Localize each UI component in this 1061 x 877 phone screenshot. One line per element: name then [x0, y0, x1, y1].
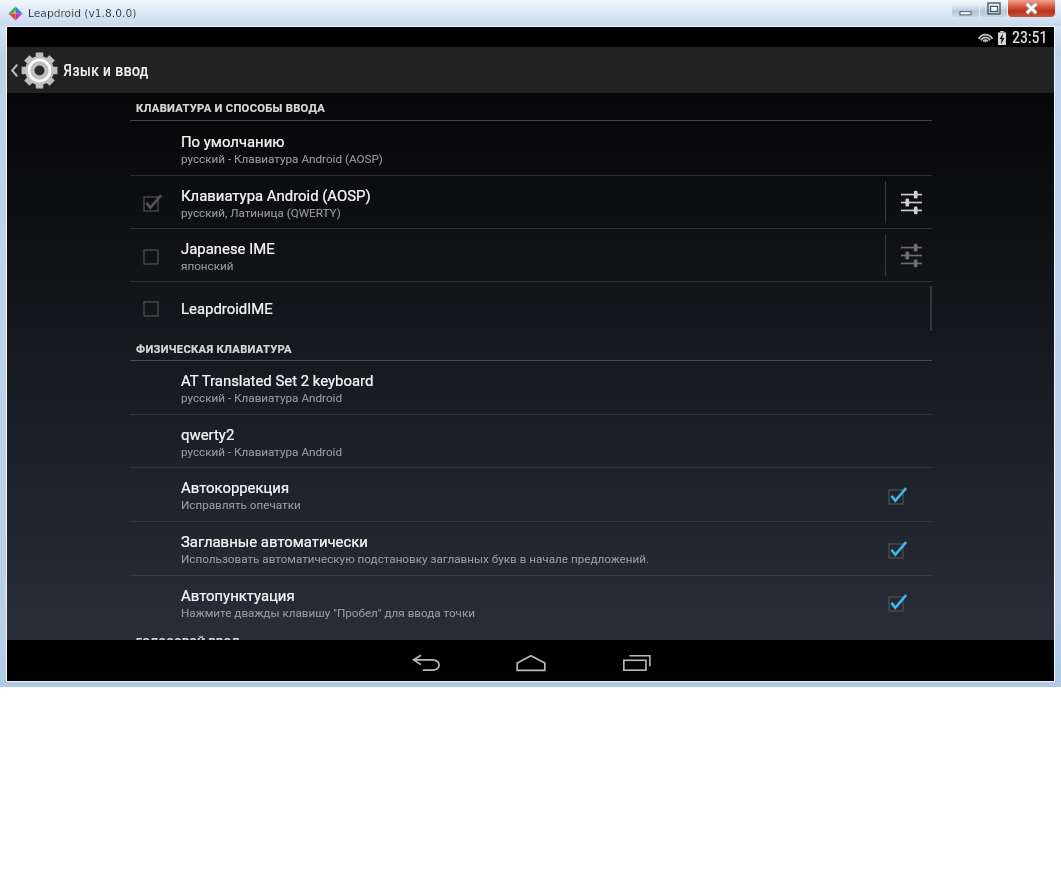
button[interactable]: Keyboard settings	[886, 229, 932, 281]
staticText: русский - Клавиатура Android (AOSP)	[181, 152, 383, 166]
staticText: 23:51	[1012, 28, 1048, 47]
staticText: ФИЗИЧЕСКАЯ КЛАВИАТУРА	[136, 343, 292, 356]
staticText: Нажмите дважды клавишу "Пробел" для ввод…	[181, 606, 476, 620]
staticText: Заглавные автоматически	[181, 533, 368, 550]
staticText: русский - Клавиатура Android	[181, 391, 342, 405]
staticText: русский, Латиница (QWERTY)	[181, 206, 341, 220]
staticText: Japanese IME	[181, 240, 275, 257]
staticText: Использовать автоматическую подстановку …	[181, 552, 650, 566]
staticText: qwerty2	[181, 426, 235, 443]
button[interactable]: Home	[478, 640, 584, 681]
staticText: LeapdroidIME	[181, 300, 273, 317]
button[interactable]: Заглавные автоматически	[130, 522, 932, 575]
staticText: Leapdroid (v1.8.0.0)	[28, 7, 137, 19]
button[interactable]: Клавиатура Android (AOSP)	[130, 176, 932, 228]
staticText: Язык и ввод	[63, 61, 149, 80]
staticText: Автопунктуация	[181, 587, 295, 604]
button[interactable]: qwerty2	[130, 415, 932, 467]
staticText: AT Translated Set 2 keyboard	[181, 372, 374, 389]
button[interactable]: Back	[7, 47, 1054, 93]
button[interactable]: Keyboard settings	[886, 176, 932, 228]
button[interactable]: Japanese IME	[130, 229, 932, 281]
button[interactable]: Автопунктуация	[130, 576, 932, 628]
staticText: По умолчанию	[181, 133, 285, 150]
staticText: русский - Клавиатура Android	[181, 445, 342, 459]
button[interactable]: Close	[1008, 0, 1055, 17]
button[interactable]: Maximise	[980, 0, 1007, 17]
other: Back	[11, 64, 18, 77]
staticText: Автокоррекция	[181, 479, 290, 496]
staticText: Исправлять опечатки	[181, 498, 301, 512]
button[interactable]: Recent apps	[584, 640, 690, 681]
button[interactable]: AT Translated Set 2 keyboard	[130, 361, 932, 414]
button[interactable]: Back	[372, 640, 478, 681]
staticText: Клавиатура Android (AOSP)	[181, 187, 371, 204]
staticText: японский	[181, 259, 234, 273]
staticText: КЛАВИАТУРА И СПОСОБЫ ВВОДА	[136, 102, 326, 115]
button[interactable]: По умолчанию	[130, 121, 932, 175]
button[interactable]: Автокоррекция	[130, 468, 932, 521]
staticText: ГОЛОСОВОЙ ВВОД	[136, 636, 240, 640]
button[interactable]: LeapdroidIME	[130, 282, 932, 332]
button[interactable]: Minimise	[952, 0, 979, 17]
